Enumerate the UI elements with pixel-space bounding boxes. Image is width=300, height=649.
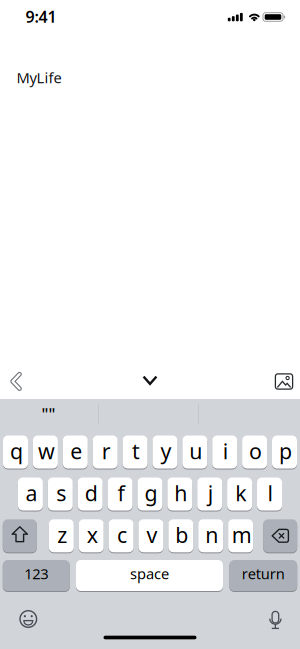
staticText: space <box>130 564 169 583</box>
staticText: j <box>208 479 214 507</box>
staticText: g <box>144 479 157 507</box>
staticText: MyLife <box>16 68 61 87</box>
staticText: 123 <box>24 564 48 583</box>
staticText: b <box>175 521 188 549</box>
staticText: s <box>56 479 66 507</box>
staticText: return <box>242 564 285 583</box>
staticText: c <box>117 521 127 549</box>
staticText: h <box>174 479 187 507</box>
staticText: v <box>146 521 157 549</box>
staticText: d <box>85 479 98 507</box>
staticText: y <box>160 437 171 465</box>
staticText: k <box>235 479 246 507</box>
staticText: p <box>279 437 292 465</box>
staticText: e <box>70 437 82 465</box>
staticText: x <box>87 521 98 549</box>
staticText: f <box>118 479 125 507</box>
staticText: i <box>223 437 229 465</box>
staticText: m <box>232 521 252 549</box>
staticText: l <box>267 479 273 507</box>
staticText: o <box>249 437 262 465</box>
staticText: n <box>205 521 218 549</box>
staticText: w <box>38 437 55 465</box>
staticText: t <box>132 437 140 465</box>
staticText: 9:41 <box>25 6 56 27</box>
staticText: "" <box>41 403 55 425</box>
staticText: r <box>102 437 111 465</box>
staticText: a <box>25 479 37 507</box>
staticText: q <box>10 437 23 465</box>
staticText: z <box>57 521 67 549</box>
staticText: u <box>189 437 202 465</box>
